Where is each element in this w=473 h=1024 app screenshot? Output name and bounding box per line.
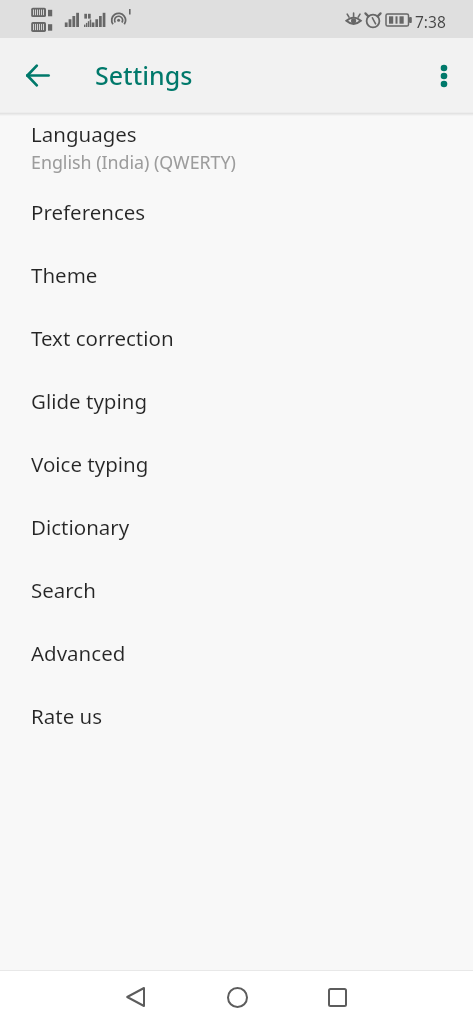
- staticText: 7:38: [415, 11, 446, 32]
- button[interactable]: Advanced: [0, 618, 473, 681]
- staticText: Theme: [31, 261, 98, 289]
- staticText: Advanced: [31, 639, 126, 667]
- staticText: Rate us: [31, 702, 103, 730]
- staticText: Voice typing: [31, 450, 149, 478]
- staticText: Dictionary: [31, 513, 130, 541]
- staticText: Settings: [95, 58, 193, 92]
- button[interactable]: Recent apps: [313, 971, 361, 1024]
- button[interactable]: Languages: [0, 114, 473, 177]
- button[interactable]: Preferences: [0, 177, 473, 240]
- button[interactable]: Theme: [0, 240, 473, 303]
- button[interactable]: Rate us: [0, 681, 473, 744]
- staticText: Glide typing: [31, 387, 148, 415]
- staticText: Preferences: [31, 198, 146, 226]
- staticText: Text correction: [31, 324, 174, 352]
- button[interactable]: Text correction: [0, 303, 473, 366]
- button[interactable]: Home: [213, 971, 261, 1024]
- button[interactable]: Search: [0, 555, 473, 618]
- staticText: Search: [31, 576, 96, 604]
- button[interactable]: More options: [421, 53, 467, 99]
- staticText: Languages: [31, 120, 137, 148]
- button[interactable]: Back: [111, 970, 159, 1023]
- button[interactable]: Voice typing: [0, 429, 473, 492]
- staticText: English (India) (QWERTY): [31, 150, 236, 174]
- button[interactable]: Navigate up: [14, 52, 60, 98]
- button[interactable]: Dictionary: [0, 492, 473, 555]
- button[interactable]: Glide typing: [0, 366, 473, 429]
